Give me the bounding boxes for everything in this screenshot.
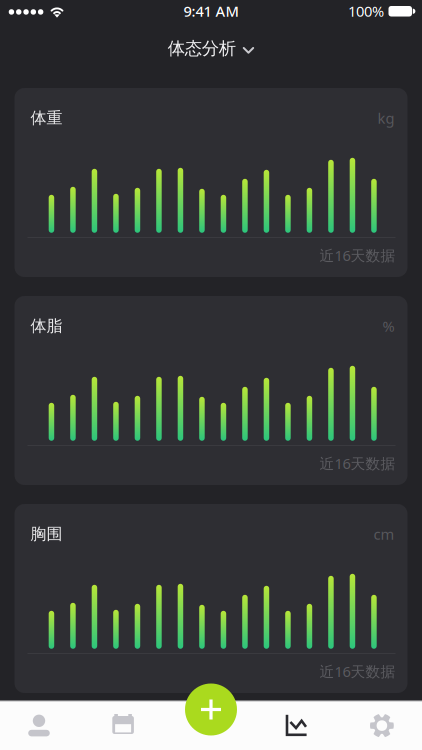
staticText: 胸围 <box>30 524 62 544</box>
button[interactable]: Settings <box>338 701 422 750</box>
staticText: 100% <box>348 1 384 21</box>
button[interactable]: Records <box>84 701 169 750</box>
staticText: 近16天数据 <box>319 245 395 265</box>
staticText: kg <box>377 108 394 128</box>
staticText: cm <box>373 524 394 544</box>
button[interactable]: 体态分析 <box>168 38 254 59</box>
button[interactable]: Analysis <box>253 701 338 750</box>
staticText: % <box>382 316 394 336</box>
staticText: 近16天数据 <box>319 453 395 473</box>
staticText: 体重 <box>30 108 62 128</box>
staticText: 近16天数据 <box>319 661 395 681</box>
staticText: 体态分析 <box>168 38 236 59</box>
staticText: 体脂 <box>30 316 62 336</box>
button[interactable]: Add <box>185 683 237 735</box>
button[interactable]: Profile <box>0 701 84 750</box>
staticText: 9:41 AM <box>183 1 238 21</box>
